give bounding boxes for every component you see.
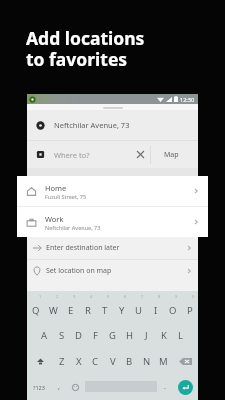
button[interactable]: Map [151, 141, 198, 168]
staticText: P [187, 304, 193, 317]
button[interactable]: K [155, 323, 172, 348]
button[interactable]: 0 [181, 298, 198, 323]
staticText: O [169, 304, 177, 317]
staticText: 1 [39, 294, 42, 299]
staticText: Set location on map [46, 266, 185, 276]
button[interactable]: L [172, 323, 189, 348]
staticText: B [126, 355, 133, 368]
button[interactable]: X [70, 348, 87, 374]
button[interactable]: Z [53, 348, 70, 374]
staticText: E [68, 304, 74, 317]
staticText: 7 [141, 294, 144, 299]
staticText: W [49, 304, 58, 317]
staticText: 0 [192, 294, 195, 299]
staticText: Neftchilar Avenue, 73 [45, 224, 101, 231]
staticText: 6 [124, 294, 127, 299]
staticText: Q [32, 304, 40, 317]
button[interactable]: 4 [79, 298, 96, 323]
button[interactable]: ?123 [27, 374, 51, 400]
button[interactable]: Home [17, 176, 208, 206]
button[interactable]: 7 [130, 298, 147, 323]
staticText: N [143, 355, 151, 368]
staticText: V [110, 355, 116, 368]
staticText: Home [45, 183, 67, 193]
button[interactable]: Enter [173, 374, 198, 400]
button[interactable]: Shift [27, 348, 53, 374]
staticText: U [135, 304, 142, 317]
staticText: A [41, 329, 48, 342]
button[interactable]: 8 [147, 298, 164, 323]
button[interactable]: Enter destination later [27, 237, 198, 259]
staticText: 5 [107, 294, 110, 299]
staticText: H [126, 329, 134, 342]
button[interactable]: D [70, 323, 87, 348]
button[interactable]: Emoji [67, 374, 83, 400]
button[interactable]: Clear [130, 141, 150, 168]
button[interactable]: Neftchilar Avenue, 73 [27, 110, 198, 140]
staticText: F [93, 329, 98, 342]
staticText: R [85, 304, 91, 317]
staticText: L [178, 329, 183, 342]
button[interactable]: 2 [45, 298, 62, 323]
staticText: K [161, 329, 167, 342]
staticText: J [145, 329, 148, 342]
staticText: Fuzuli Street, 75 [45, 193, 87, 200]
staticText: 2 [56, 294, 59, 299]
button[interactable]: G [104, 323, 121, 348]
staticText: G [109, 329, 116, 342]
staticText: 12:30 [180, 96, 195, 103]
staticText: C [92, 355, 99, 368]
button[interactable]: 3 [62, 298, 79, 323]
button[interactable]: 6 [113, 298, 130, 323]
staticText: 4 [90, 294, 93, 299]
staticText: M [159, 355, 168, 368]
button[interactable]: J [138, 323, 155, 348]
button[interactable]: 1 [27, 298, 45, 323]
staticText: 9 [175, 294, 178, 299]
button[interactable]: M [155, 348, 172, 374]
staticText: ?123 [33, 384, 45, 391]
button[interactable]: 5 [96, 298, 113, 323]
staticText: D [75, 329, 82, 342]
button[interactable]: H [121, 323, 138, 348]
staticText: T [102, 304, 108, 317]
button[interactable]: C [87, 348, 104, 374]
staticText: Z [59, 355, 65, 368]
staticText: I [154, 304, 158, 317]
button[interactable]: V [104, 348, 121, 374]
staticText: S [59, 329, 65, 342]
staticText: Where to? [54, 150, 130, 160]
button[interactable]: S [53, 323, 70, 348]
staticText: , [58, 382, 60, 392]
staticText: Add locations to favorites [26, 26, 145, 71]
button[interactable]: F [87, 323, 104, 348]
staticText: Map [164, 150, 179, 160]
staticText: X [76, 355, 82, 368]
button[interactable]: N [138, 348, 155, 374]
button[interactable]: Set location on map [27, 260, 198, 282]
button[interactable]: Where to? [27, 141, 198, 168]
staticText: . [164, 382, 166, 392]
staticText: Y [119, 304, 125, 317]
button[interactable]: Backspace [172, 348, 198, 374]
staticText: 3 [73, 294, 76, 299]
button[interactable]: B [121, 348, 138, 374]
staticText: Work [45, 214, 64, 224]
button[interactable]: , [51, 374, 67, 400]
button[interactable]: Work [17, 207, 208, 237]
staticText: Neftchilar Avenue, 73 [54, 120, 130, 130]
button[interactable]: A [36, 323, 53, 348]
staticText: 8 [158, 294, 161, 299]
button[interactable]: 9 [164, 298, 181, 323]
staticText: Enter destination later [46, 243, 185, 253]
